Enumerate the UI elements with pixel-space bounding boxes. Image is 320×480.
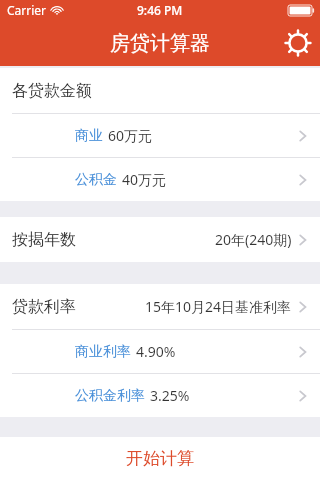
staticText: 3.25% [150, 386, 190, 405]
button[interactable]: 按揭年数 [0, 217, 320, 262]
staticText: 贷款利率 [12, 297, 76, 317]
button[interactable]: 开始计算 [0, 437, 320, 480]
button[interactable]: 贷款利率 [0, 284, 320, 329]
staticText: 公积金 [75, 171, 117, 189]
staticText: 按揭年数 [12, 230, 76, 250]
staticText: 商业利率 [75, 343, 131, 361]
button[interactable]: 商业 [0, 114, 320, 157]
staticText: 20年(240期) [215, 230, 292, 249]
staticText: 4.90% [136, 342, 176, 361]
staticText: 60万元 [108, 126, 153, 145]
staticText: 开始计算 [126, 448, 194, 469]
staticText: 公积金利率 [75, 387, 145, 405]
staticText: 商业 [75, 127, 103, 145]
button[interactable]: 公积金利率 [0, 374, 320, 417]
staticText: Carrier [7, 2, 47, 18]
staticText: 9:46 PM [137, 2, 183, 18]
staticText: 15年10月24日基准利率 [145, 297, 292, 316]
staticText: 房贷计算器 [110, 31, 210, 56]
button[interactable]: 公积金 [0, 158, 320, 201]
staticText: 各贷款金额 [12, 81, 92, 101]
staticText: 40万元 [122, 170, 167, 189]
button[interactable]: Settings [276, 21, 320, 65]
button[interactable]: 商业利率 [0, 330, 320, 373]
